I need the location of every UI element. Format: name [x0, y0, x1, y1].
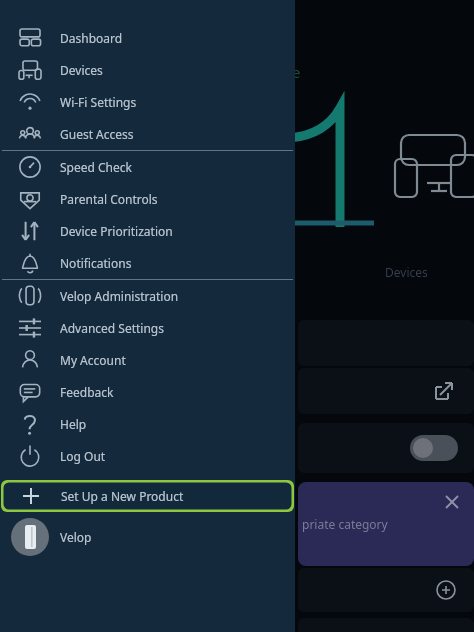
- staticText: Speed Check: [60, 159, 132, 175]
- staticText: Parental Controls: [60, 191, 158, 207]
- staticText: Guest Access: [60, 126, 134, 142]
- other: Add: [436, 580, 456, 600]
- staticText: e: [292, 62, 301, 82]
- staticText: Set Up a New Product: [61, 488, 184, 504]
- button[interactable]: Device Prioritization: [0, 215, 295, 247]
- button[interactable]: Guest Access: [0, 118, 295, 150]
- button[interactable]: Open external: [298, 368, 474, 414]
- other: Close: [446, 496, 458, 508]
- staticText: Wi-Fi Settings: [60, 94, 137, 110]
- button[interactable]: Feedback: [0, 376, 295, 408]
- button[interactable]: My Account: [0, 344, 295, 376]
- button[interactable]: Log Out: [0, 440, 295, 472]
- button[interactable]: [410, 435, 458, 461]
- staticText: Devices: [60, 62, 103, 78]
- button[interactable]: Speed Check: [0, 151, 295, 183]
- staticText: Velop Administration: [60, 288, 179, 304]
- staticText: Log Out: [60, 448, 106, 464]
- staticText: Advanced Settings: [60, 320, 164, 336]
- staticText: Device Prioritization: [60, 223, 173, 239]
- staticText: priate category: [302, 516, 388, 532]
- staticText: Feedback: [60, 384, 114, 400]
- button[interactable]: Notifications: [0, 247, 295, 279]
- staticText: Help: [60, 416, 87, 432]
- button[interactable]: Devices: [0, 54, 295, 86]
- button[interactable]: Set Up a New Product: [1, 480, 294, 512]
- button[interactable]: Add: [298, 568, 474, 612]
- button[interactable]: Wi-Fi Settings: [0, 86, 295, 118]
- button[interactable]: Velop: [0, 512, 295, 562]
- staticText: Dashboard: [60, 30, 123, 46]
- button[interactable]: Dashboard: [0, 22, 295, 54]
- staticText: My Account: [60, 352, 126, 368]
- button[interactable]: [298, 423, 474, 473]
- button[interactable]: Velop Administration: [0, 280, 295, 312]
- button[interactable]: Advanced Settings: [0, 312, 295, 344]
- staticText: Notifications: [60, 255, 132, 271]
- staticText: Velop: [60, 529, 92, 545]
- button[interactable]: Parental Controls: [0, 183, 295, 215]
- other: Open external: [436, 383, 452, 399]
- button[interactable]: Help: [0, 408, 295, 440]
- staticText: Devices: [385, 264, 428, 280]
